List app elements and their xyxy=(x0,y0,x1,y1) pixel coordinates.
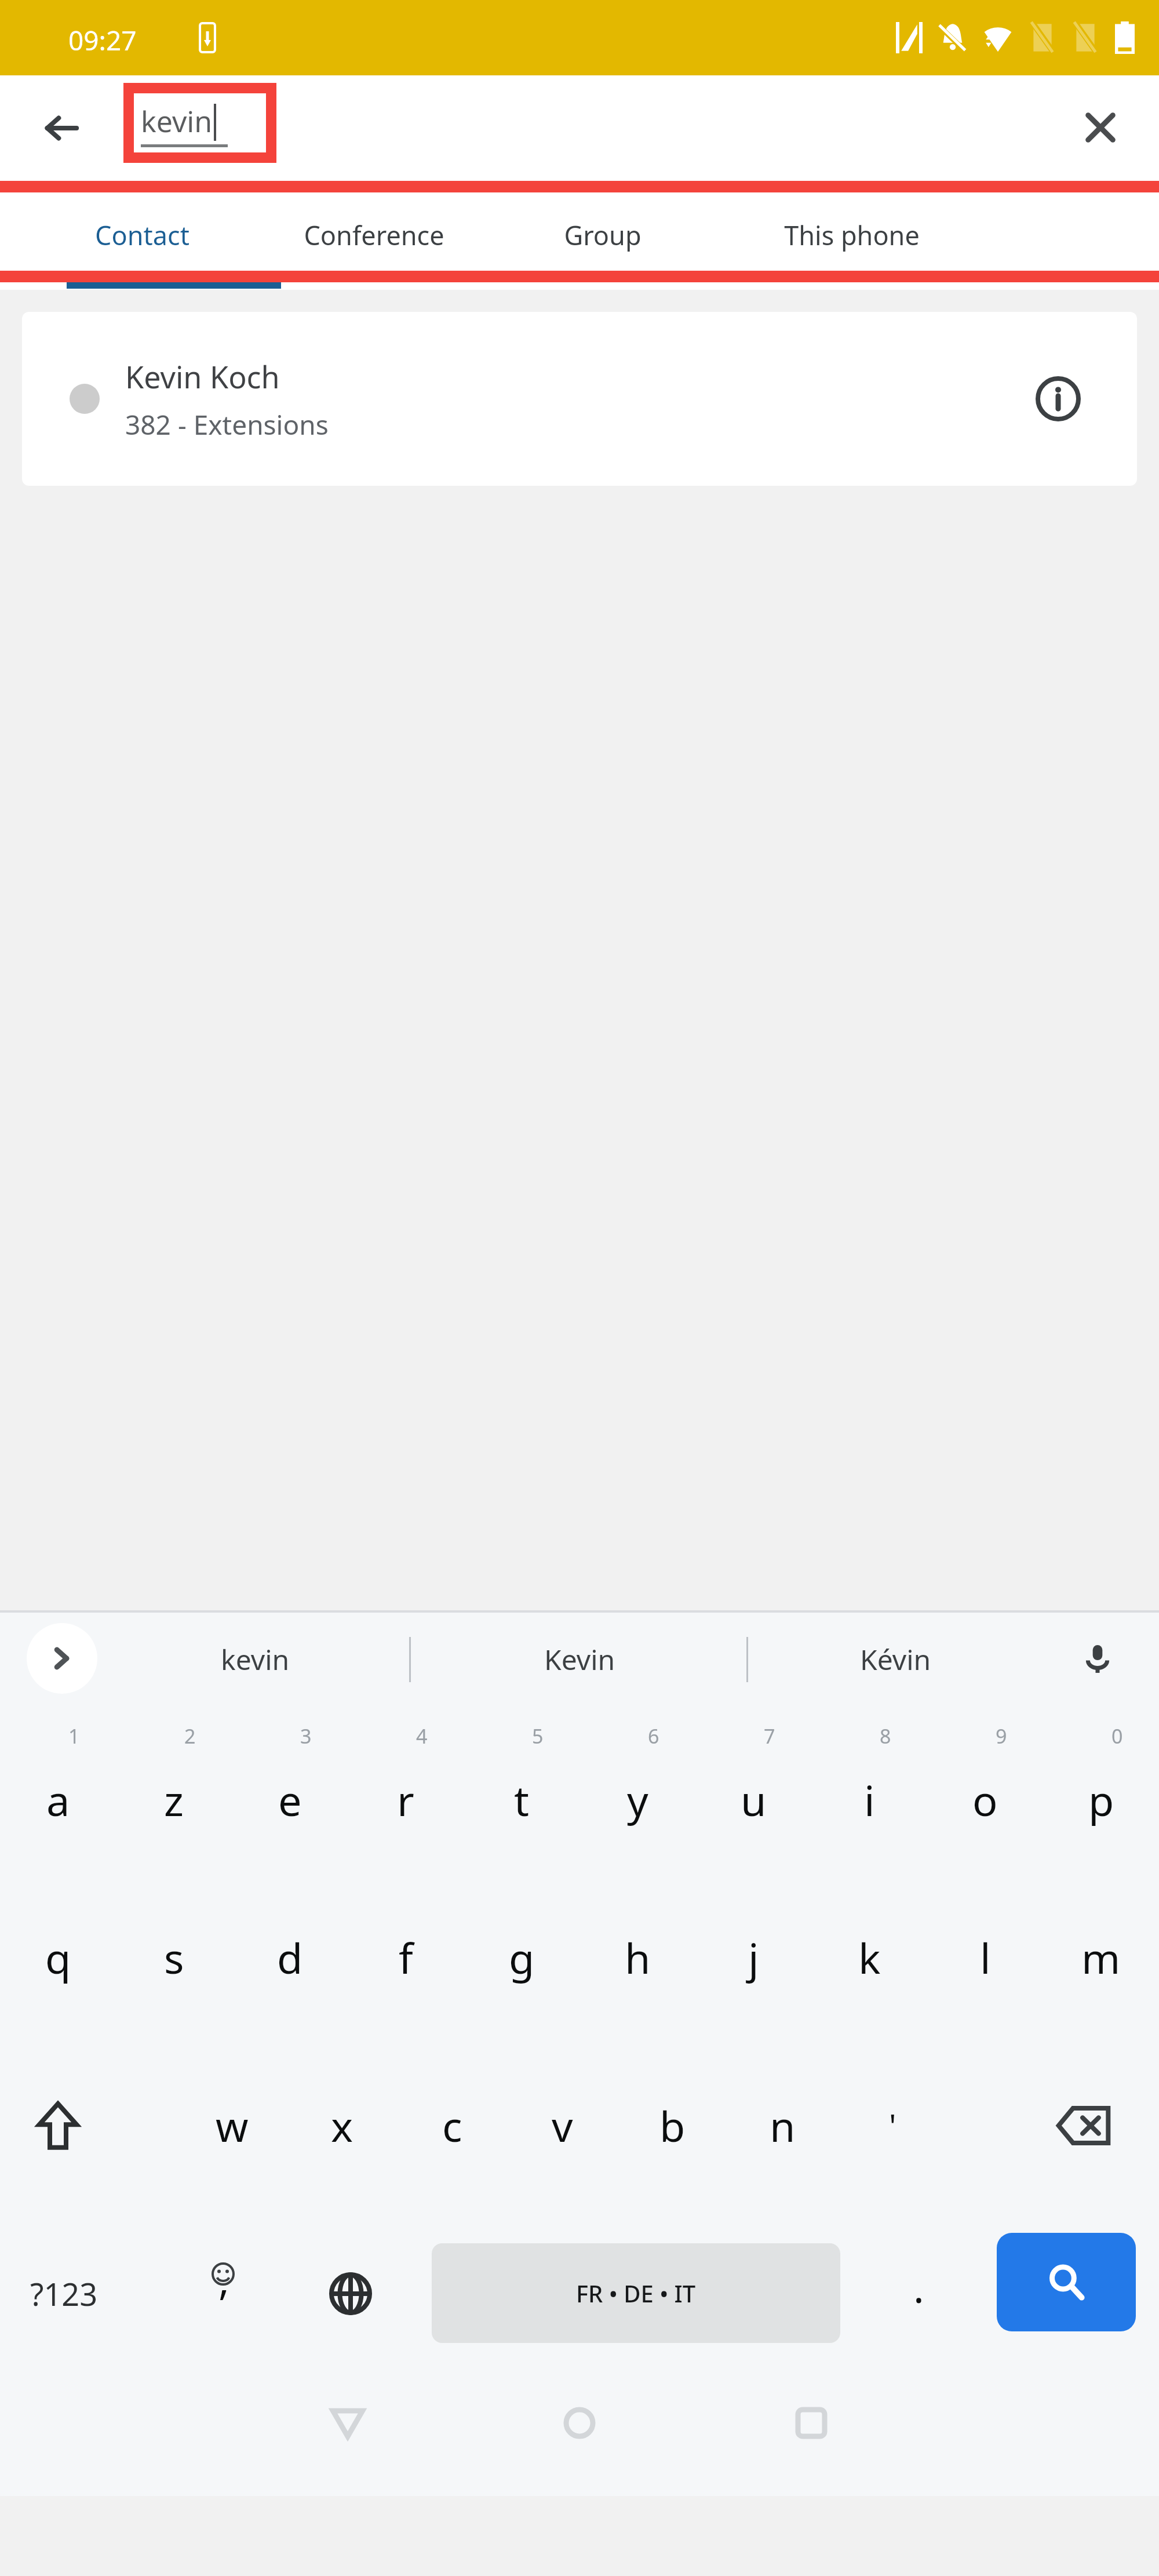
button[interactable]: 3 xyxy=(232,1705,348,1873)
button[interactable]: j xyxy=(695,1873,811,2042)
button[interactable]: 1 xyxy=(0,1705,116,1873)
staticText: n xyxy=(770,2097,796,2154)
staticText: Kevin xyxy=(544,1640,615,1678)
button[interactable]: Clear search xyxy=(1076,103,1125,152)
staticText: h xyxy=(625,1929,651,1986)
button[interactable]: Search xyxy=(997,2233,1136,2331)
button[interactable]: g xyxy=(464,1873,579,2042)
staticText: Contact xyxy=(95,217,189,253)
staticText: 2 xyxy=(184,1723,196,1749)
staticText: ’ xyxy=(220,2276,227,2331)
staticText: 4 xyxy=(416,1723,428,1749)
button[interactable]: Back xyxy=(41,107,82,149)
staticText: l xyxy=(980,1929,991,1986)
button[interactable]: Backspace xyxy=(1049,2091,1118,2160)
staticText: o xyxy=(972,1771,998,1828)
button[interactable]: q xyxy=(0,1873,116,2042)
button[interactable]: Kévin xyxy=(820,1613,971,1705)
button[interactable]: 4 xyxy=(348,1705,464,1873)
staticText: p xyxy=(1088,1771,1114,1828)
staticText: m xyxy=(1081,1929,1121,1986)
button[interactable]: s xyxy=(116,1873,232,2042)
staticText: r xyxy=(397,1771,414,1828)
button[interactable]: kevin xyxy=(141,99,259,147)
staticText: 9 xyxy=(996,1723,1007,1749)
staticText: w xyxy=(216,2097,249,2154)
staticText: a xyxy=(46,1771,70,1828)
button[interactable]: k xyxy=(811,1873,927,2042)
staticText: Kevin Koch xyxy=(125,356,280,397)
button[interactable]: Group xyxy=(539,180,666,290)
button[interactable]: b xyxy=(617,2042,727,2210)
staticText: b xyxy=(659,2097,686,2154)
button[interactable]: Kevin xyxy=(504,1613,655,1705)
button[interactable]: 0 xyxy=(1043,1705,1159,1873)
button[interactable]: More suggestions xyxy=(27,1623,97,1694)
staticText: 7 xyxy=(764,1723,775,1749)
staticText: e xyxy=(278,1771,302,1828)
button[interactable]: Contact xyxy=(67,180,217,290)
staticText: y xyxy=(627,1771,648,1828)
button[interactable]: ' xyxy=(837,2042,947,2210)
button[interactable]: Contact details xyxy=(1029,370,1087,428)
button[interactable]: 8 xyxy=(811,1705,927,1873)
staticText: j xyxy=(748,1929,759,1986)
button[interactable]: This phone xyxy=(748,180,956,290)
staticText: 382 - Extensions xyxy=(125,406,329,443)
button[interactable]: 2 xyxy=(116,1705,232,1873)
button[interactable]: kevin xyxy=(180,1613,330,1705)
staticText: Group xyxy=(564,217,642,253)
button[interactable]: Change language xyxy=(301,2210,400,2378)
button[interactable]: x xyxy=(287,2042,397,2210)
staticText: 09:27 xyxy=(68,22,137,59)
staticText: Conference xyxy=(304,217,444,253)
staticText: s xyxy=(164,1929,184,1986)
staticText: x xyxy=(331,2097,353,2154)
staticText: ?123 xyxy=(30,2272,98,2315)
button[interactable]: 9 xyxy=(927,1705,1043,1873)
staticText: kevin xyxy=(141,101,213,141)
button[interactable]: n xyxy=(727,2042,837,2210)
staticText: q xyxy=(45,1929,71,1986)
button[interactable]: f xyxy=(348,1873,464,2042)
staticText: k xyxy=(858,1929,881,1986)
button[interactable]: Voice input xyxy=(1070,1631,1125,1687)
staticText: ' xyxy=(889,2104,896,2148)
staticText: FR • DE • IT xyxy=(576,2277,696,2309)
button[interactable]: Comma, emoji xyxy=(174,2210,272,2378)
staticText: . xyxy=(913,2260,924,2315)
staticText: d xyxy=(277,1929,303,1986)
staticText: v xyxy=(552,2097,573,2154)
staticText: c xyxy=(442,2097,462,2154)
staticText: This phone xyxy=(784,217,920,253)
staticText: f xyxy=(399,1929,413,1986)
button[interactable]: Recent apps xyxy=(753,2378,869,2496)
button[interactable]: Conference xyxy=(272,180,475,290)
button[interactable]: Back xyxy=(290,2378,406,2496)
staticText: z xyxy=(164,1771,184,1828)
button[interactable]: Shift xyxy=(0,2042,116,2210)
button[interactable]: m xyxy=(1043,1873,1159,2042)
staticText: 6 xyxy=(648,1723,659,1749)
staticText: 5 xyxy=(532,1723,544,1749)
button[interactable]: FR • DE • IT xyxy=(432,2243,840,2343)
staticText: i xyxy=(864,1771,875,1828)
button[interactable]: d xyxy=(232,1873,348,2042)
staticText: 1 xyxy=(68,1723,80,1749)
button[interactable]: v xyxy=(507,2042,617,2210)
button[interactable]: w xyxy=(177,2042,287,2210)
staticText: kevin xyxy=(221,1640,290,1678)
button[interactable]: c xyxy=(397,2042,507,2210)
button[interactable]: . xyxy=(863,2210,974,2378)
button[interactable]: h xyxy=(579,1873,695,2042)
button[interactable]: Kevin Koch xyxy=(22,312,1137,486)
staticText: u xyxy=(741,1771,767,1828)
button[interactable]: l xyxy=(927,1873,1043,2042)
button[interactable]: Home xyxy=(522,2378,637,2496)
staticText: 8 xyxy=(880,1723,891,1749)
button[interactable]: ?123 xyxy=(0,2210,127,2378)
button[interactable]: 6 xyxy=(579,1705,695,1873)
button[interactable]: 5 xyxy=(464,1705,579,1873)
button[interactable]: 7 xyxy=(695,1705,811,1873)
staticText: g xyxy=(509,1929,535,1986)
